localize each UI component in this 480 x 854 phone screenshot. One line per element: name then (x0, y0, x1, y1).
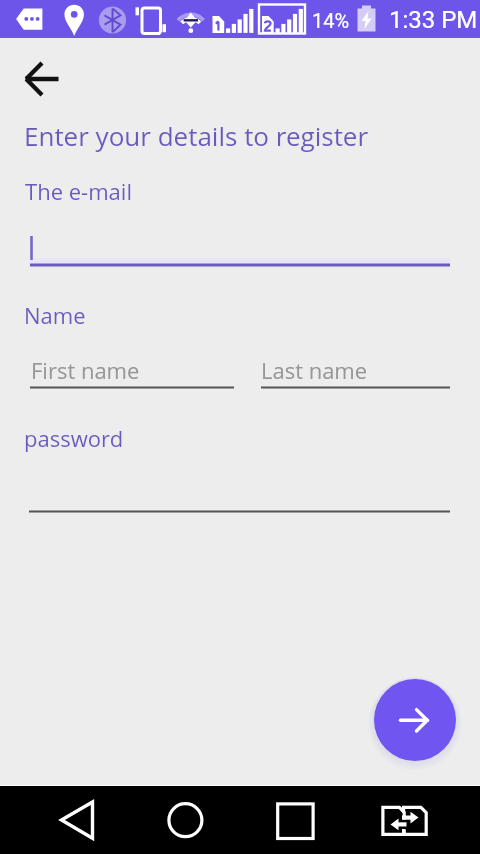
button[interactable]: Navigate back (13, 51, 71, 109)
staticText: Last name (261, 355, 368, 385)
button[interactable]: Recent apps (261, 785, 329, 854)
button[interactable]: Next (374, 679, 456, 761)
staticText: Name (24, 300, 86, 330)
button[interactable] (29, 480, 450, 514)
staticText: First name (31, 355, 140, 385)
staticText: password (24, 423, 124, 453)
staticText: 1:33 PM (389, 6, 478, 34)
staticText: Enter your details to register (24, 118, 369, 153)
button[interactable]: Home (152, 785, 220, 854)
button[interactable]: Back (43, 785, 111, 854)
button[interactable]: First name (30, 356, 234, 390)
button[interactable]: Switch apps (372, 785, 438, 854)
staticText: 14% (312, 9, 350, 32)
button[interactable]: Last name (261, 356, 450, 390)
button[interactable] (30, 228, 450, 268)
staticText: The e-mail (25, 176, 132, 206)
